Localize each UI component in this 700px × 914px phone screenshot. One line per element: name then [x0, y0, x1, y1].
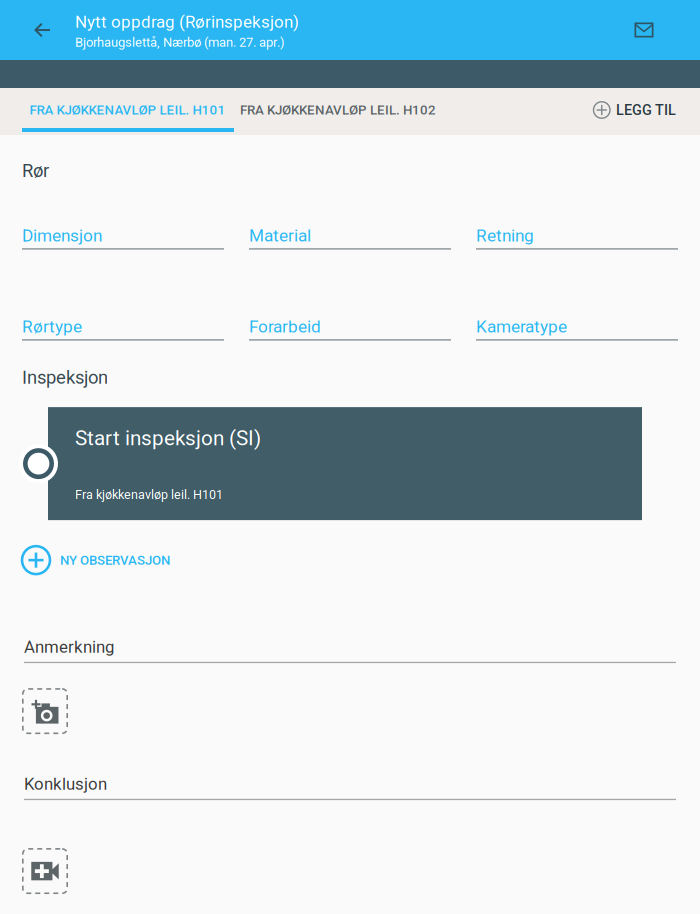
button[interactable]: Back	[18, 6, 66, 54]
staticText: Konklusjon	[24, 774, 107, 794]
button[interactable]: Konklusjon	[24, 774, 676, 800]
button[interactable]: Material	[249, 226, 451, 250]
staticText: Start inspeksjon (SI)	[75, 426, 261, 450]
staticText: Retning	[476, 226, 534, 246]
button[interactable]: Rørtype	[22, 317, 224, 341]
button[interactable]: FRA KJØKKENAVLØP LEIL. H102	[233, 88, 443, 132]
staticText: FRA KJØKKENAVLØP LEIL. H101	[29, 102, 225, 118]
button[interactable]: NY OBSERVASJON	[0, 540, 170, 580]
button[interactable]: Kameratype	[476, 317, 678, 341]
staticText: Fra kjøkkenavløp leil. H101	[75, 487, 223, 502]
staticText: Nytt oppdrag (Rørinspeksjon)	[75, 12, 299, 32]
staticText: Dimensjon	[22, 226, 102, 246]
staticText: Kameratype	[476, 317, 567, 337]
button[interactable]: Forarbeid	[249, 317, 451, 341]
button[interactable]: Anmerkning	[24, 637, 676, 663]
button[interactable]: Add video	[22, 848, 68, 894]
staticText: FRA KJØKKENAVLØP LEIL. H102	[240, 102, 436, 118]
staticText: Inspeksjon	[22, 367, 108, 388]
staticText: LEGG TIL	[616, 102, 676, 118]
staticText: Forarbeid	[249, 317, 321, 337]
staticText: Material	[249, 226, 311, 246]
button[interactable]: Dimensjon	[22, 226, 224, 250]
staticText: Bjorhaugslettå, Nærbø (man. 27. apr.)	[75, 35, 285, 50]
staticText: NY OBSERVASJON	[60, 552, 170, 568]
button[interactable]: Add photo	[22, 688, 68, 734]
button[interactable]: Retning	[476, 226, 678, 250]
staticText: Anmerkning	[24, 637, 114, 657]
button[interactable]: LEGG TIL	[593, 88, 700, 132]
button[interactable]: Start inspeksjon (SI)	[48, 407, 642, 520]
staticText: Rør	[22, 160, 49, 182]
staticText: Rørtype	[22, 317, 82, 337]
button[interactable]: Messages	[620, 6, 668, 54]
button[interactable]: FRA KJØKKENAVLØP LEIL. H101	[22, 88, 233, 132]
